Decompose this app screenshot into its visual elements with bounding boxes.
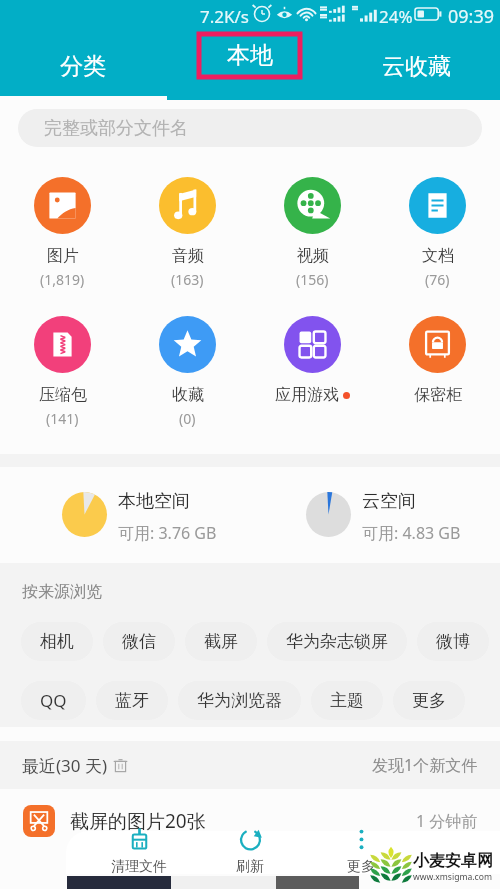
button[interactable]: 云空间 [250, 490, 461, 544]
staticText: 清理文件 [111, 858, 167, 874]
staticText: 蓝牙 [115, 690, 149, 711]
staticText: (156) [296, 270, 329, 289]
staticText: 更多 [412, 690, 446, 711]
staticText: 刷新 [236, 858, 264, 874]
staticText: 华为杂志锁屏 [286, 631, 388, 652]
button[interactable]: 本地 [199, 34, 300, 77]
staticText: 音频 [172, 246, 204, 266]
button[interactable]: 文档 [375, 177, 500, 289]
button[interactable]: QQ [21, 681, 86, 720]
button[interactable]: 收藏 [125, 316, 250, 428]
staticText: 09:39 [448, 4, 495, 29]
staticText: 收藏 [172, 385, 204, 405]
button[interactable]: 应用游戏 [250, 316, 375, 405]
staticText: 压缩包 [39, 385, 87, 405]
staticText: 微信 [122, 631, 156, 652]
staticText: 24% [379, 5, 413, 28]
staticText: 云空间 [362, 490, 416, 513]
button[interactable]: 完整或部分文件名 [18, 109, 482, 147]
button[interactable]: Delete recent [112, 757, 129, 774]
button[interactable]: 清理文件 [94, 827, 184, 874]
staticText: 截屏的图片20张 [70, 808, 206, 834]
button[interactable]: 分类 [0, 34, 166, 99]
staticText: 最近(30 天) [22, 754, 108, 777]
staticText: 可用: 3.76 GB [118, 522, 217, 544]
staticText: 云收藏 [382, 52, 451, 81]
button[interactable]: 蓝牙 [96, 681, 168, 720]
staticText: 按来源浏览 [22, 582, 102, 602]
staticText: 完整或部分文件名 [44, 117, 188, 140]
staticText: 本地空间 [118, 490, 190, 513]
staticText: 相机 [40, 631, 74, 652]
staticText: www.xmsigma.com [413, 871, 492, 883]
button[interactable]: 云收藏 [333, 34, 500, 99]
staticText: 可用: 4.83 GB [362, 522, 461, 544]
staticText: (141) [46, 409, 79, 428]
staticText: 图片 [47, 246, 79, 266]
staticText: 主题 [330, 690, 364, 711]
button[interactable]: 华为杂志锁屏 [267, 622, 407, 661]
button[interactable]: 本地空间 [0, 490, 217, 544]
button[interactable]: 主题 [311, 681, 383, 720]
button[interactable]: 音频 [125, 177, 250, 289]
staticText: (0) [179, 409, 196, 428]
staticText: (1,819) [40, 270, 85, 289]
staticText: 保密柜 [414, 385, 462, 405]
button[interactable]: 截屏 [185, 622, 257, 661]
staticText: (76) [425, 270, 450, 289]
staticText: 应用游戏 [275, 385, 339, 405]
staticText: 截屏 [204, 631, 238, 652]
button[interactable]: 保密柜 [375, 316, 500, 405]
button[interactable]: 视频 [250, 177, 375, 289]
button[interactable]: 截屏的图片20张 [0, 793, 500, 848]
staticText: 更多 [347, 858, 375, 874]
button[interactable]: 微信 [103, 622, 175, 661]
button[interactable]: 微博 [417, 622, 489, 661]
button[interactable]: 更多 [393, 681, 465, 720]
button[interactable]: 更多 [316, 827, 406, 874]
staticText: 视频 [297, 246, 329, 266]
button[interactable]: 刷新 [205, 827, 295, 874]
staticText: 文档 [422, 246, 454, 266]
staticText: (163) [171, 270, 204, 289]
staticText: 分类 [60, 52, 106, 81]
staticText: 发现1个新文件 [372, 754, 478, 776]
staticText: QQ [40, 689, 67, 712]
button[interactable]: 华为浏览器 [178, 681, 301, 720]
staticText: 7.2K/s [200, 5, 249, 28]
button[interactable]: 压缩包 [0, 316, 125, 428]
staticText: 本地 [227, 41, 273, 70]
staticText: 1 分钟前 [416, 810, 478, 832]
staticText: 微博 [436, 631, 470, 652]
button[interactable]: 相机 [21, 622, 93, 661]
button[interactable]: 图片 [0, 177, 125, 289]
staticText: 华为浏览器 [197, 690, 282, 711]
staticText: 小麦安卓网 [413, 851, 493, 871]
